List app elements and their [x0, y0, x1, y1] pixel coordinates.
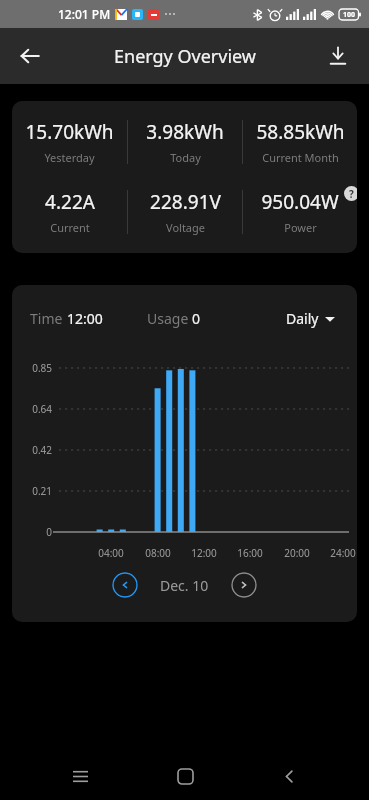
button[interactable]: Help — [344, 186, 357, 201]
staticText: 0.85 — [12, 361, 52, 375]
button[interactable]: Back — [265, 752, 313, 800]
staticText: Dec. 10 — [160, 576, 209, 595]
staticText: Usage — [147, 309, 192, 328]
staticText: 0 — [12, 525, 52, 539]
staticText: Yesterday — [44, 150, 95, 165]
button[interactable]: 15.70kWh — [12, 101, 357, 253]
button[interactable]: Daily — [282, 305, 339, 332]
staticText: Voltage — [166, 220, 205, 235]
button[interactable]: Next day — [231, 572, 257, 598]
staticText: 228.91V — [150, 189, 221, 215]
staticText: 3.98kWh — [146, 119, 224, 145]
button[interactable]: Download — [317, 35, 359, 77]
staticText: Current — [50, 220, 90, 235]
button[interactable]: Back — [8, 34, 52, 78]
staticText: 12:00 — [67, 309, 103, 328]
staticText: 0 — [192, 309, 201, 328]
staticText: 58.85kWh — [256, 119, 345, 145]
staticText: 100 — [343, 10, 356, 20]
button[interactable]: Previous day — [112, 572, 138, 598]
staticText: 15.70kWh — [25, 119, 114, 145]
staticText: 0.42 — [12, 443, 52, 457]
staticText: 4.22A — [45, 189, 95, 215]
staticText: 20:00 — [280, 546, 314, 560]
staticText: Current Month — [262, 150, 339, 165]
staticText: 04:00 — [94, 546, 128, 560]
staticText: 08:00 — [141, 546, 175, 560]
staticText: Power — [284, 220, 317, 235]
staticText: 24:00 — [326, 546, 357, 560]
staticText: 12:00 — [187, 546, 221, 560]
button[interactable]: Home — [161, 752, 209, 800]
staticText: 950.04W — [261, 189, 339, 215]
staticText: 16:00 — [233, 546, 267, 560]
staticText: Daily — [286, 309, 319, 328]
button[interactable]: Recent apps — [56, 752, 104, 800]
staticText: 0.64 — [12, 402, 52, 416]
staticText: Energy Overview — [114, 44, 256, 69]
staticText: Time — [30, 309, 67, 328]
staticText: ? — [349, 187, 354, 201]
staticText: 0.21 — [12, 484, 52, 498]
staticText: 12:01 PM — [58, 6, 111, 22]
staticText: Today — [170, 150, 201, 165]
